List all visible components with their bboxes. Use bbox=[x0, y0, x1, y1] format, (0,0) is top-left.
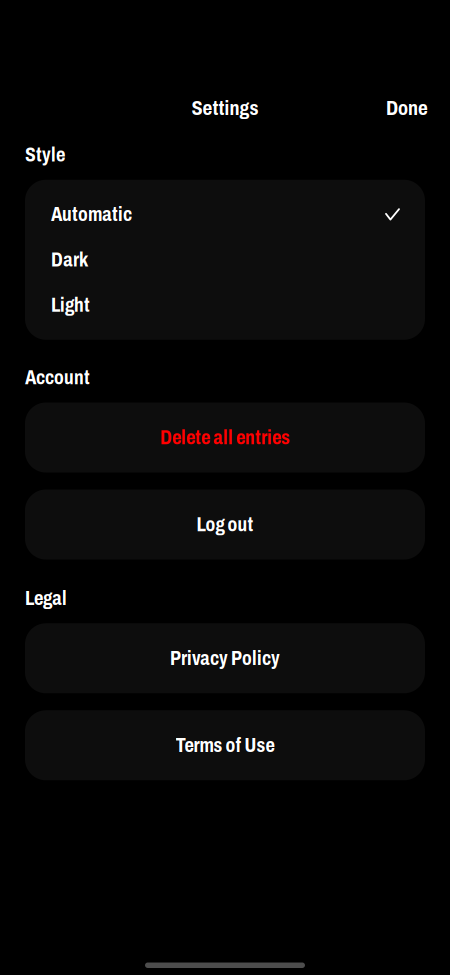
button[interactable]: Log out bbox=[25, 489, 425, 559]
button[interactable]: Light bbox=[25, 282, 425, 328]
staticText: Style bbox=[25, 144, 65, 166]
staticText: Log out bbox=[196, 514, 253, 535]
staticText: Light bbox=[51, 294, 90, 316]
staticText: Legal bbox=[25, 587, 67, 609]
staticText: Done bbox=[386, 97, 428, 119]
staticText: Automatic bbox=[51, 203, 132, 225]
staticText: Terms of Use bbox=[175, 734, 274, 756]
staticText: Settings bbox=[191, 97, 258, 119]
button[interactable]: Privacy Policy bbox=[25, 623, 425, 693]
button[interactable]: Done bbox=[364, 86, 450, 130]
button[interactable]: Terms of Use bbox=[25, 710, 425, 780]
button[interactable]: Automatic bbox=[25, 192, 425, 237]
staticText: Account bbox=[25, 367, 90, 389]
staticText: Privacy Policy bbox=[170, 647, 280, 669]
staticText: Delete all entries bbox=[160, 427, 290, 448]
staticText: Dark bbox=[51, 249, 88, 271]
button[interactable]: Dark bbox=[25, 237, 425, 282]
button[interactable]: Delete all entries bbox=[25, 402, 425, 472]
